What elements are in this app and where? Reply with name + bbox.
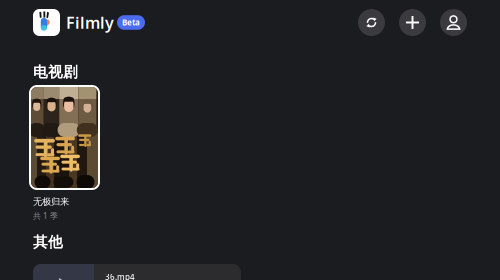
button[interactable]: Profile [440,9,467,36]
button[interactable]: 无极归来 [29,85,100,221]
staticText: 电视剧 [33,63,78,81]
button[interactable]: Filmly [33,9,145,36]
staticText: Beta [122,17,140,28]
staticText: Filmly [66,12,114,33]
staticText: 36.mp4 [105,272,135,280]
staticText: 其他 [33,233,63,251]
staticText: 共 1 季 [33,210,58,221]
staticText: 无极归来 [33,196,69,207]
button[interactable]: 36.mp4 [33,264,241,280]
button[interactable]: Add [399,9,426,36]
button[interactable]: Refresh [358,9,385,36]
